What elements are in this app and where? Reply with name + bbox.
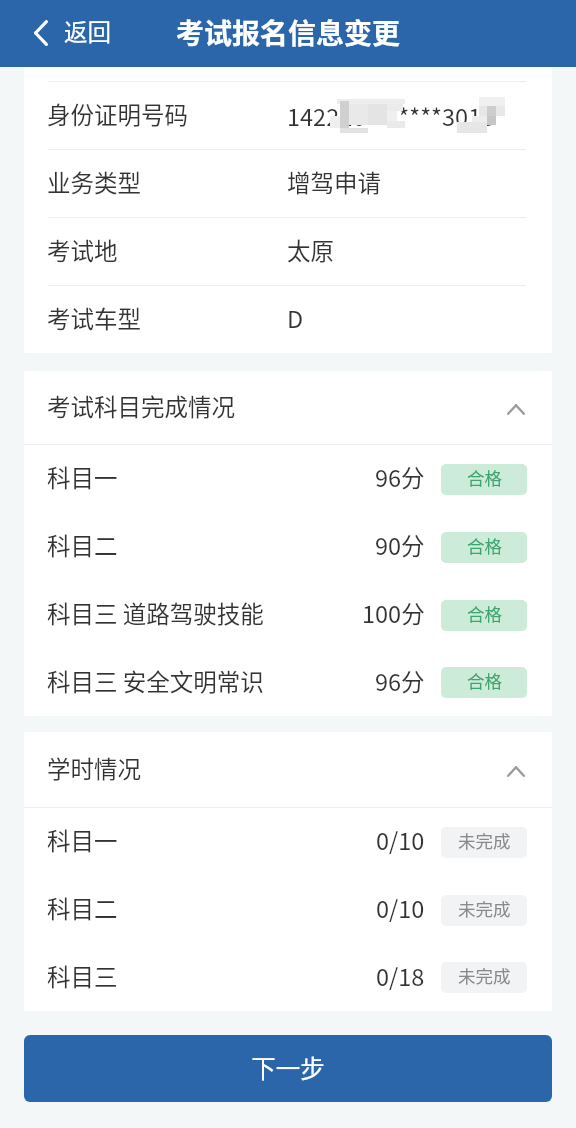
staticText: 96分 — [375, 460, 425, 494]
staticText: 科目三 道路驾驶技能 — [47, 596, 264, 630]
staticText: D — [287, 301, 304, 335]
staticText: 合格 — [467, 668, 502, 693]
staticText: 科目三 安全文明常识 — [47, 664, 264, 698]
button[interactable]: 科目一 — [24, 445, 552, 513]
staticText: 下一步 — [251, 1050, 325, 1085]
staticText: 业务类型 — [47, 165, 141, 199]
staticText: 合格 — [467, 533, 502, 558]
button[interactable]: 科目二 — [24, 513, 552, 581]
button[interactable]: 身份证明号码 — [24, 82, 552, 149]
staticText: 返回 — [64, 14, 111, 48]
staticText: 142226*******3018 — [287, 99, 495, 129]
staticText: 科目三 — [47, 959, 118, 993]
staticText: 科目二 — [47, 528, 118, 562]
button[interactable]: 科目三 道路驾驶技能 — [24, 581, 552, 649]
staticText: 未完成 — [458, 963, 511, 988]
staticText: 未完成 — [458, 828, 511, 853]
button[interactable]: 合格 — [441, 464, 527, 495]
button[interactable]: 合格 — [441, 600, 527, 631]
staticText: 0/10 — [376, 823, 425, 857]
staticText: 考试地 — [47, 233, 118, 267]
staticText: 0/10 — [376, 891, 425, 925]
button[interactable]: 未完成 — [441, 962, 527, 993]
staticText: 0/18 — [376, 959, 425, 993]
button[interactable]: 科目三 安全文明常识 — [24, 649, 552, 716]
button[interactable]: 科目三 — [24, 944, 552, 1011]
staticText: 合格 — [467, 601, 502, 626]
button[interactable]: 未完成 — [441, 895, 527, 926]
button[interactable]: 合格 — [441, 667, 527, 698]
staticText: 合格 — [467, 465, 502, 490]
staticText: 身份证明号码 — [47, 97, 188, 131]
button[interactable]: 学时情况 — [24, 732, 552, 807]
staticText: 考试科目完成情况 — [47, 389, 235, 423]
staticText: 考试车型 — [47, 301, 141, 335]
button[interactable]: 考试车型 — [24, 286, 552, 353]
staticText: 学时情况 — [47, 751, 141, 785]
staticText: 太原 — [287, 233, 334, 267]
button[interactable]: 考试地 — [24, 218, 552, 285]
staticText: 科目二 — [47, 891, 118, 925]
button[interactable]: 返回 — [0, 0, 131, 67]
button[interactable]: 业务类型 — [24, 150, 552, 217]
button[interactable]: 合格 — [441, 532, 527, 563]
other: 收起 — [507, 404, 525, 415]
button[interactable]: 科目二 — [24, 876, 552, 944]
staticText: 90分 — [375, 528, 425, 562]
staticText: 考试报名信息变更 — [176, 12, 401, 53]
staticText: 科目一 — [47, 823, 118, 857]
staticText: 科目一 — [47, 460, 118, 494]
staticText: 增驾申请 — [287, 165, 381, 199]
staticText: 96分 — [375, 664, 425, 698]
other: 收起 — [507, 766, 525, 777]
button[interactable]: 科目一 — [24, 808, 552, 876]
button[interactable]: 下一步 — [24, 1035, 552, 1102]
button[interactable]: 考试科目完成情况 — [24, 371, 552, 444]
button[interactable]: 未完成 — [441, 827, 527, 858]
other: 返回 — [34, 20, 48, 46]
staticText: 100分 — [362, 596, 425, 630]
staticText: 未完成 — [458, 896, 511, 921]
